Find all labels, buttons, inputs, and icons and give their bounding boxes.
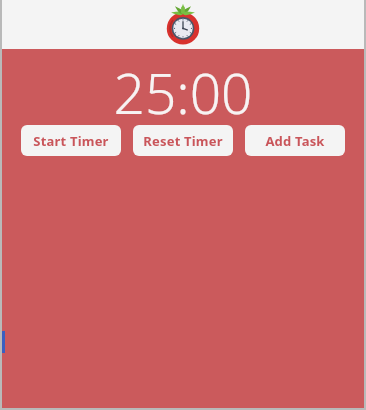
- button[interactable]: Start Timer: [21, 125, 121, 156]
- button[interactable]: Pomodoro timer logo: [163, 5, 203, 45]
- button[interactable]: Reset Timer: [133, 125, 233, 156]
- staticText: 25:00: [113, 55, 253, 117]
- button[interactable]: Add Task: [245, 125, 345, 156]
- staticText: Reset Timer: [143, 132, 223, 150]
- staticText: Start Timer: [33, 132, 109, 150]
- staticText: Add Task: [265, 132, 325, 150]
